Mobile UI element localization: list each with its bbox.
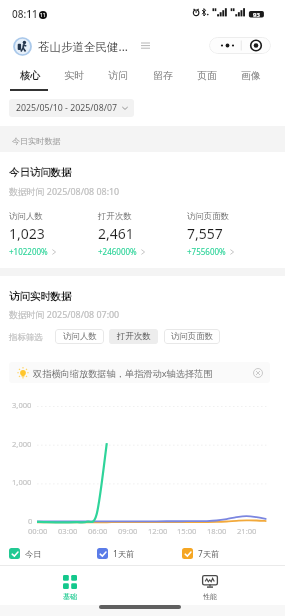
staticText: 1天前 <box>113 548 135 559</box>
staticText: 打开次数 <box>117 331 151 342</box>
button[interactable] <box>9 206 95 258</box>
staticText: 7,557 <box>187 224 223 243</box>
button[interactable] <box>98 206 184 258</box>
button[interactable]: Menu <box>209 37 271 54</box>
staticText: 数据时间 2025/08/08 07:00 <box>9 308 120 320</box>
button[interactable]: 访问人数 <box>55 329 104 344</box>
button[interactable]: 访问页面数 <box>164 329 220 344</box>
staticText: 苍山步道全民健... <box>38 39 128 55</box>
staticText: 2,461 <box>98 224 134 243</box>
staticText: 指标筛选 <box>9 332 43 343</box>
staticText: 今日访问数据 <box>9 166 72 179</box>
staticText: 今日 <box>25 549 42 559</box>
staticText: 访问 <box>108 69 128 82</box>
staticText: 留存 <box>153 69 173 82</box>
staticText: 1,023 <box>9 224 45 243</box>
staticText: 3,000 <box>12 400 32 410</box>
staticText: 访问实时数据 <box>9 290 72 303</box>
button[interactable] <box>187 206 273 258</box>
staticText: 数据时间 2025/08/08 08:10 <box>9 185 120 197</box>
button[interactable]: Close tip <box>253 368 263 378</box>
button[interactable]: 留存 <box>142 64 184 86</box>
staticText: +246000% <box>98 246 137 257</box>
staticText: 今日实时数据 <box>12 136 61 146</box>
staticText: 09:00 <box>118 526 138 536</box>
button[interactable]: 页面 <box>186 64 228 86</box>
button[interactable]: 画像 <box>230 64 272 86</box>
staticText: 实时 <box>64 69 84 82</box>
button[interactable]: 打开次数 <box>109 329 158 344</box>
button[interactable]: 核心 <box>9 64 51 86</box>
staticText: 画像 <box>241 69 261 82</box>
staticText: 性能 <box>203 592 217 601</box>
staticText: 00:00 <box>28 526 48 536</box>
staticText: 06:00 <box>88 526 108 536</box>
button[interactable]: 实时 <box>53 64 95 86</box>
staticText: 08:11 <box>12 7 38 21</box>
staticText: 7天前 <box>198 548 220 559</box>
staticText: 双指横向缩放数据轴，单指滑动x轴选择范围 <box>33 367 213 380</box>
staticText: 1,000 <box>12 477 32 487</box>
staticText: 11 <box>40 12 46 19</box>
button[interactable]: 访问 <box>97 64 139 86</box>
staticText: +755600% <box>187 246 226 257</box>
staticText: 打开次数 <box>98 211 132 222</box>
button[interactable]: 2025/05/10 - 2025/08/07 <box>16 99 128 117</box>
staticText: 21:00 <box>237 526 257 536</box>
staticText: 访问页面数 <box>171 331 213 342</box>
staticText: 基础 <box>63 592 77 601</box>
staticText: 93 <box>253 11 260 18</box>
staticText: 03:00 <box>58 526 78 536</box>
staticText: 18:00 <box>207 526 227 536</box>
staticText: 0 <box>28 516 33 526</box>
staticText: 12:00 <box>148 526 168 536</box>
staticText: 访问人数 <box>63 331 97 342</box>
staticText: +102200% <box>9 246 48 257</box>
staticText: 15:00 <box>177 526 197 536</box>
staticText: 访问人数 <box>9 211 43 222</box>
staticText: 页面 <box>197 69 217 82</box>
button[interactable]: 今日 <box>9 548 42 559</box>
button[interactable]: 1天前 <box>97 548 135 559</box>
staticText: 2025/05/10 - 2025/08/07 <box>16 102 118 114</box>
button[interactable] <box>169 566 251 604</box>
button[interactable]: 7天前 <box>182 548 220 559</box>
staticText: 2,000 <box>12 439 32 449</box>
staticText: 访问页面数 <box>187 211 229 222</box>
staticText: 核心 <box>20 69 40 82</box>
button[interactable] <box>30 566 112 604</box>
